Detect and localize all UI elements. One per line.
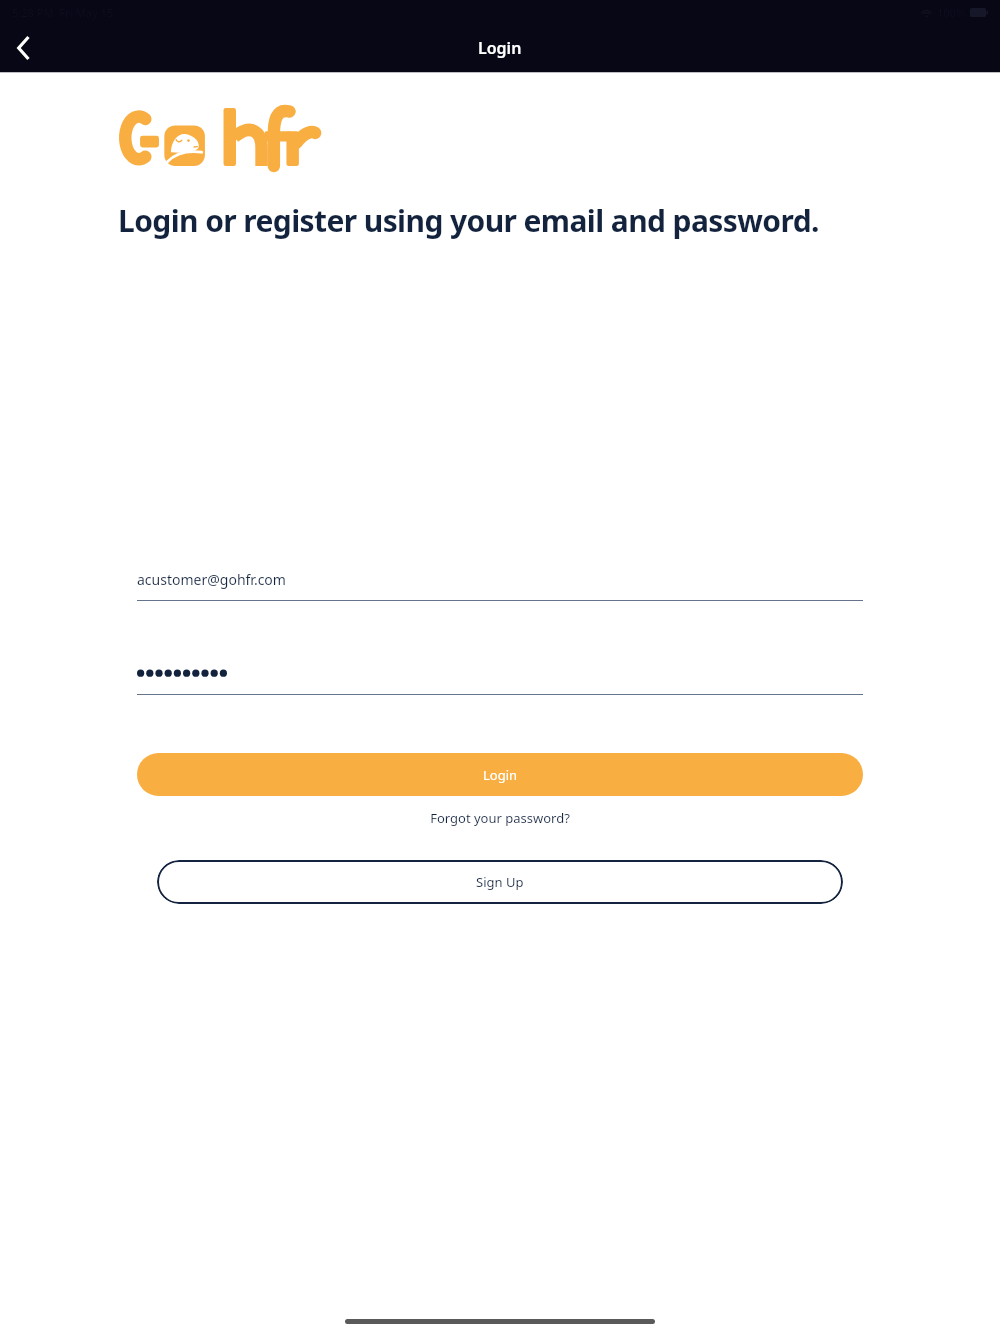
button[interactable]: Login	[137, 753, 863, 796]
staticText: Login or register using your email and p…	[118, 200, 819, 241]
staticText: Login	[483, 766, 518, 784]
staticText: Forgot your password?	[430, 809, 570, 827]
staticText: acustomer@gohfr.com	[137, 570, 286, 589]
button[interactable]: Sign Up	[157, 860, 843, 904]
button[interactable]: acustomer@gohfr.com	[137, 570, 863, 601]
button[interactable]: Back	[0, 24, 48, 72]
button[interactable]	[137, 662, 863, 695]
staticText: Login	[478, 37, 522, 59]
button[interactable]: Forgot your password?	[422, 806, 578, 830]
staticText: Sign Up	[476, 873, 524, 891]
